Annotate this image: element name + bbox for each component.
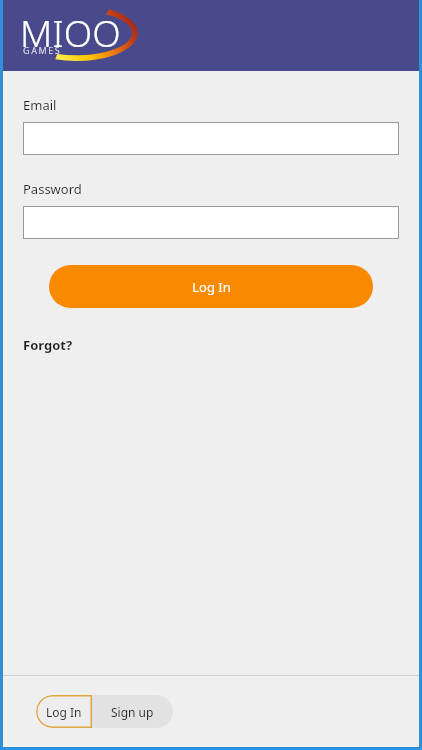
button[interactable] xyxy=(23,206,399,239)
staticText: Sign up xyxy=(111,704,154,720)
button[interactable]: Forgot? xyxy=(22,334,74,356)
staticText: Log In xyxy=(192,278,231,296)
button[interactable]: Log In xyxy=(49,265,373,308)
button[interactable]: Log In xyxy=(36,695,92,728)
button[interactable]: Sign up xyxy=(92,695,173,728)
staticText: MIOO xyxy=(20,7,121,57)
staticText: Log In xyxy=(46,704,82,720)
staticText: GAMES xyxy=(23,44,62,56)
staticText: Password xyxy=(23,180,82,198)
button[interactable] xyxy=(23,122,399,155)
staticText: Forgot? xyxy=(23,336,73,354)
staticText: Email xyxy=(23,96,57,114)
